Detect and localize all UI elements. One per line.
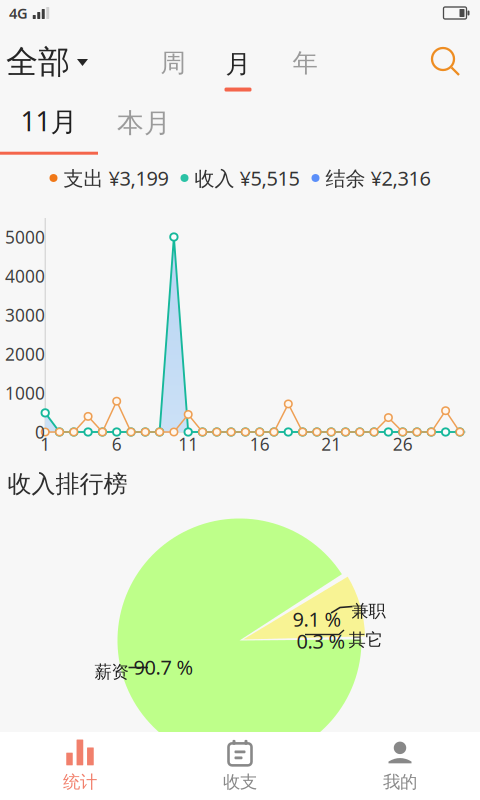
staticText: 6 xyxy=(112,432,122,455)
staticText: 21 xyxy=(321,432,341,455)
staticText: 2000 xyxy=(5,342,45,365)
button[interactable]: 11月 xyxy=(0,93,98,155)
staticText: 11 xyxy=(178,432,198,455)
button[interactable]: 全部 xyxy=(0,32,102,92)
staticText: 年 xyxy=(292,47,317,78)
staticText: 4G xyxy=(9,3,28,23)
button[interactable]: 周 xyxy=(144,35,201,90)
staticText: 0.3 % xyxy=(296,628,345,654)
staticText: 全部 xyxy=(6,42,70,82)
staticText: 1 xyxy=(40,432,50,455)
button[interactable]: 收支 xyxy=(160,732,320,800)
staticText: 收入排行榜 xyxy=(7,469,127,499)
staticText: 其它 xyxy=(348,629,382,651)
staticText: 0 xyxy=(35,420,45,443)
staticText: 我的 xyxy=(383,771,417,793)
staticText: 结余 ¥2,316 xyxy=(319,165,430,191)
staticText: 统计 xyxy=(63,771,97,793)
staticText: 兼职 xyxy=(351,600,385,622)
button[interactable]: 月 xyxy=(208,36,267,97)
staticText: 9.1 % xyxy=(292,606,341,632)
staticText: 支出 ¥3,199 xyxy=(57,165,168,191)
staticText: 90.7 % xyxy=(133,654,193,680)
staticText: 26 xyxy=(393,432,413,455)
button[interactable]: 本月 xyxy=(91,94,197,152)
staticText: 5000 xyxy=(5,225,45,248)
staticText: 月 xyxy=(225,48,250,79)
staticText: 1000 xyxy=(5,381,45,404)
staticText: 11月 xyxy=(20,103,77,139)
staticText: 3000 xyxy=(5,303,45,326)
button[interactable]: 我的 xyxy=(320,732,480,800)
button[interactable]: 统计 xyxy=(0,732,160,800)
button[interactable]: Search xyxy=(422,38,470,86)
staticText: 4000 xyxy=(5,264,45,287)
staticText: 薪资 xyxy=(94,661,128,683)
staticText: 收支 xyxy=(223,771,257,793)
staticText: 16 xyxy=(250,432,270,455)
staticText: 本月 xyxy=(117,107,171,139)
staticText: 收入 ¥5,515 xyxy=(188,165,299,191)
staticText: 周 xyxy=(160,47,185,78)
button[interactable]: 年 xyxy=(276,35,333,90)
